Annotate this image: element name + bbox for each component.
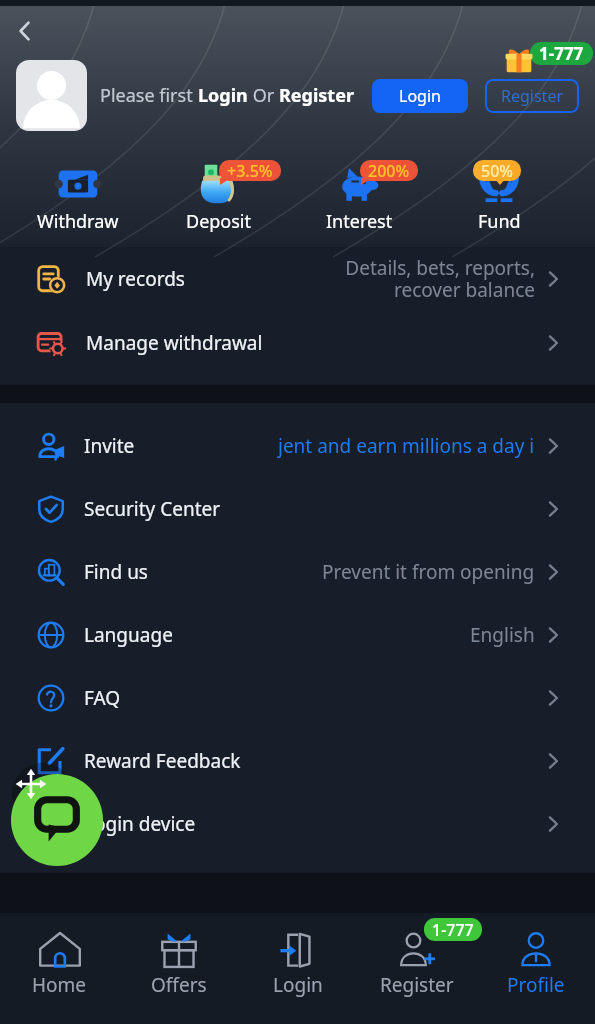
button[interactable]: Manage withdrawal — [0, 311, 595, 375]
staticText: Prevent it from opening — [322, 559, 535, 585]
staticText: Register — [501, 85, 564, 107]
staticText: 200% — [368, 160, 410, 181]
staticText: FAQ — [84, 685, 121, 711]
button[interactable]: Withdraw — [8, 163, 148, 234]
staticText: Fund — [478, 209, 521, 234]
staticText: 1-777 — [432, 919, 474, 941]
staticText: Login — [399, 85, 441, 107]
button[interactable]: Login — [372, 79, 468, 113]
staticText: Login device — [84, 811, 196, 837]
button[interactable]: Avatar — [16, 60, 87, 131]
button[interactable]: Invite — [0, 414, 595, 477]
button[interactable]: Security Center — [0, 477, 595, 540]
button[interactable]: Language — [0, 603, 595, 666]
staticText: Interest — [326, 209, 393, 234]
staticText: Invite — [84, 433, 135, 459]
staticText: Or — [248, 83, 279, 108]
staticText: Security Center — [84, 496, 221, 522]
button[interactable]: Interest — [289, 163, 429, 234]
button[interactable]: 1-777 — [357, 913, 476, 1024]
button[interactable]: Find us — [0, 540, 595, 603]
staticText: +3.5% — [227, 160, 273, 181]
staticText: jent and earn millions a day i — [278, 433, 535, 459]
staticText: Deposit — [186, 209, 252, 234]
button[interactable]: Reward Feedback — [0, 729, 595, 792]
button[interactable]: Offers — [119, 913, 238, 1024]
staticText: Login — [273, 972, 323, 998]
staticText: My records — [86, 266, 185, 292]
staticText: Manage withdrawal — [86, 330, 263, 356]
other: Move — [15, 768, 47, 800]
staticText: Language — [84, 622, 173, 648]
staticText: English — [470, 622, 535, 648]
button[interactable]: FAQ — [0, 666, 595, 729]
button[interactable]: Login device — [0, 792, 595, 855]
button[interactable]: Login — [238, 913, 357, 1024]
staticText: 1-777 — [539, 42, 584, 65]
button[interactable]: Home — [0, 913, 119, 1024]
staticText: Profile — [507, 972, 565, 998]
staticText: Register — [380, 972, 454, 998]
staticText: Home — [32, 972, 87, 998]
staticText: Please first — [100, 83, 198, 108]
staticText: Withdraw — [37, 209, 119, 234]
button[interactable]: Fund — [429, 163, 569, 234]
staticText: Offers — [151, 972, 207, 998]
staticText: Details, bets, reports, recover balance — [345, 255, 535, 303]
staticText: Reward Feedback — [84, 748, 241, 774]
staticText: 50% — [481, 160, 513, 181]
staticText: Login — [198, 83, 248, 108]
button[interactable]: Deposit — [148, 163, 289, 234]
staticText: Find us — [84, 559, 148, 585]
staticText: Register — [279, 83, 354, 108]
button[interactable]: My records — [0, 247, 595, 311]
button[interactable]: Profile — [476, 913, 595, 1024]
button[interactable]: Register — [485, 79, 579, 113]
button[interactable]: Chat support — [11, 774, 103, 866]
button[interactable]: Back — [4, 10, 46, 52]
